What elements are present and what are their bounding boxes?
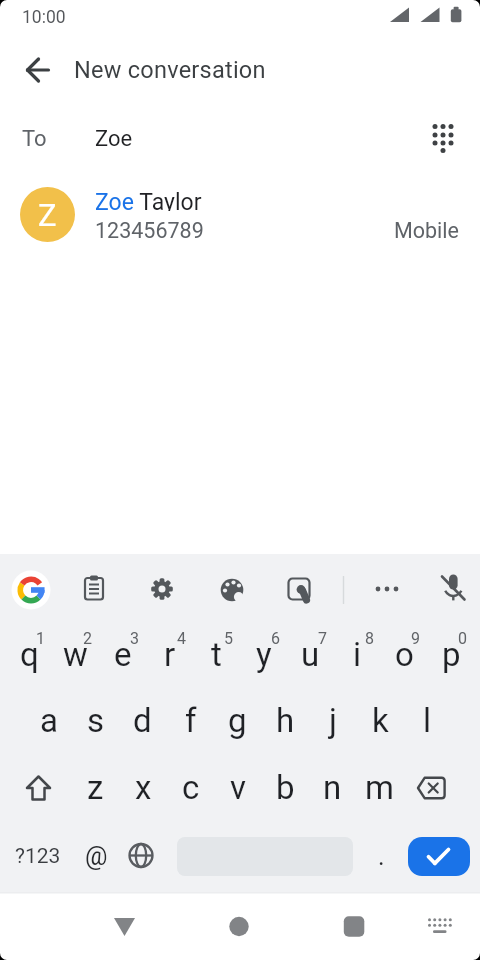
button[interactable] [10, 754, 72, 821]
staticText: l [423, 701, 432, 740]
button[interactable] [7, 566, 55, 614]
staticText: Taylor [134, 189, 202, 211]
staticText: Zoe [95, 189, 134, 211]
button[interactable] [14, 46, 62, 94]
staticText: h [276, 701, 295, 740]
button[interactable]: t [193, 620, 240, 688]
button[interactable]: k [357, 686, 404, 754]
staticText: o [395, 635, 414, 674]
button[interactable]: u [287, 620, 334, 688]
staticText: Mobile [394, 218, 459, 243]
staticText: s [87, 701, 105, 740]
staticText: m [365, 768, 394, 807]
staticText: Z [38, 197, 57, 233]
button[interactable]: y [240, 620, 287, 688]
staticText: @ [85, 842, 108, 871]
button[interactable]: . [357, 826, 405, 886]
button[interactable]: m [356, 754, 403, 821]
staticText: z [87, 768, 104, 807]
staticText: d [133, 701, 152, 740]
button[interactable]: v [214, 754, 261, 821]
staticText: To [22, 126, 47, 152]
staticText: q [20, 635, 39, 674]
button[interactable]: a [25, 686, 72, 754]
button[interactable]: j [309, 686, 356, 754]
button[interactable] [117, 831, 165, 879]
button[interactable]: h [262, 686, 309, 754]
staticText: k [372, 701, 389, 740]
staticText: r [164, 635, 176, 674]
button[interactable]: Z [0, 183, 480, 245]
staticText: 2 [83, 629, 92, 648]
staticText: n [323, 768, 342, 807]
button[interactable]: i [334, 620, 381, 688]
button[interactable]: s [72, 686, 119, 754]
staticText: . [378, 842, 385, 871]
button[interactable] [408, 837, 470, 876]
staticText: 9 [411, 629, 420, 648]
staticText: 0 [458, 629, 467, 648]
button[interactable]: e [99, 620, 146, 688]
button[interactable]: d [119, 686, 166, 754]
button[interactable]: o [381, 620, 428, 688]
staticText: 1 [36, 629, 45, 648]
staticText: ?123 [15, 844, 61, 869]
button[interactable]: c [167, 754, 214, 821]
button[interactable] [275, 565, 323, 613]
staticText: 7 [318, 629, 327, 648]
staticText: f [185, 701, 197, 740]
button[interactable] [70, 564, 118, 612]
button[interactable]: @ [72, 826, 120, 886]
staticText: Zoe [95, 126, 133, 152]
button[interactable] [138, 565, 186, 613]
staticText: i [353, 635, 362, 674]
staticText: 3 [130, 629, 139, 648]
staticText: p [442, 635, 461, 674]
button[interactable] [416, 902, 464, 950]
staticText: 6 [271, 629, 280, 648]
button[interactable]: n [309, 754, 356, 821]
staticText: e [114, 635, 132, 674]
button[interactable]: g [214, 686, 261, 754]
button[interactable] [215, 902, 263, 950]
button[interactable]: x [120, 754, 167, 821]
button[interactable]: w [52, 620, 99, 688]
button[interactable] [363, 565, 411, 613]
button[interactable] [100, 902, 148, 950]
staticText: u [301, 635, 320, 674]
staticText: v [230, 768, 246, 807]
button[interactable] [419, 114, 467, 162]
staticText: c [182, 768, 200, 807]
button[interactable]: p [428, 620, 475, 688]
staticText: 4 [177, 629, 186, 648]
button[interactable]: q [6, 620, 53, 688]
staticText: 8 [365, 629, 374, 648]
staticText: t [211, 635, 222, 674]
staticText: 123456789 [95, 218, 204, 243]
button[interactable]: b [262, 754, 309, 821]
button[interactable]: z [72, 754, 119, 821]
staticText: g [228, 701, 247, 740]
staticText: j [329, 701, 337, 740]
button[interactable]: l [404, 686, 451, 754]
button[interactable] [208, 566, 256, 614]
staticText: y [256, 635, 272, 674]
staticText: b [276, 768, 295, 807]
staticText: a [40, 701, 58, 740]
staticText: x [135, 768, 152, 807]
button[interactable]: ?123 [10, 826, 66, 886]
button[interactable] [409, 754, 471, 821]
button[interactable]: r [146, 620, 193, 688]
button[interactable]: f [167, 686, 214, 754]
staticText: w [63, 635, 88, 674]
staticText: New conversation [74, 56, 266, 84]
staticText: 10:00 [22, 7, 66, 28]
button[interactable] [330, 902, 378, 950]
staticText: 5 [224, 629, 233, 648]
button[interactable] [429, 564, 477, 612]
